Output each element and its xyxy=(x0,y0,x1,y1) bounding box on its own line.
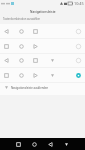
button[interactable]: Back xyxy=(44,138,56,150)
button[interactable]: Navigationsleiste ausblenden xyxy=(0,81,85,94)
button[interactable] xyxy=(0,39,85,54)
staticText: Navigationsleiste xyxy=(30,10,56,14)
staticText: Navigationsleiste ausblenden xyxy=(11,86,49,90)
button[interactable] xyxy=(0,68,85,83)
staticText: Tastenkombination auswählen xyxy=(3,17,41,21)
button[interactable] xyxy=(0,53,85,68)
button[interactable]: Home xyxy=(28,138,40,150)
button[interactable] xyxy=(0,24,85,39)
button[interactable]: Recent apps xyxy=(12,138,24,150)
button[interactable]: Hide navigation bar xyxy=(60,138,72,150)
staticText: 10:45 xyxy=(74,1,84,6)
